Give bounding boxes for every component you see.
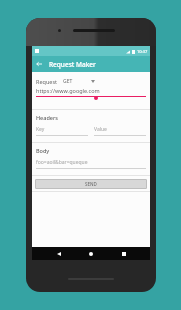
- staticText: Body: [36, 147, 50, 154]
- staticText: foo=aoil&bar=queque: [36, 159, 88, 166]
- staticText: Request Maker: [49, 60, 96, 69]
- staticText: Key: [36, 126, 45, 133]
- button[interactable]: Back: [53, 248, 65, 260]
- button[interactable]: SEND: [35, 179, 147, 189]
- button[interactable]: Key: [36, 126, 88, 136]
- button[interactable]: GET: [63, 78, 95, 85]
- staticText: Request: [36, 78, 58, 85]
- staticText: Headers: [36, 114, 58, 121]
- staticText: GET: [63, 78, 73, 85]
- button[interactable]: Home: [85, 248, 97, 260]
- staticText: SEND: [85, 181, 97, 187]
- button[interactable]: Recent apps: [118, 248, 130, 260]
- button[interactable]: Back: [32, 57, 46, 71]
- staticText: 10:37: [137, 49, 148, 54]
- staticText: Value: [94, 126, 107, 133]
- staticText: https://www.google.com: [36, 87, 100, 94]
- button[interactable]: Value: [94, 126, 146, 136]
- button[interactable]: foo=aoil&bar=queque: [36, 159, 146, 169]
